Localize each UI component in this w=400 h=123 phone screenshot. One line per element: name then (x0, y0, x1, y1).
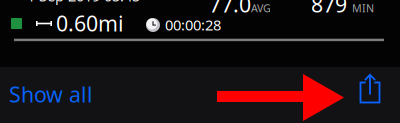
staticText: AVG (251, 1, 271, 15)
staticText: 0.60mi (56, 9, 124, 37)
button[interactable]: Share (359, 73, 380, 103)
staticText: Show all (9, 80, 93, 108)
staticText: 00:00:28 (165, 15, 221, 34)
staticText: 77.0 (209, 0, 251, 18)
staticText: 1 Sep 2019 05:45 (27, 0, 140, 5)
staticText: 879 (311, 0, 347, 18)
button[interactable]: Show all (9, 80, 93, 108)
staticText: MIN (352, 1, 374, 15)
